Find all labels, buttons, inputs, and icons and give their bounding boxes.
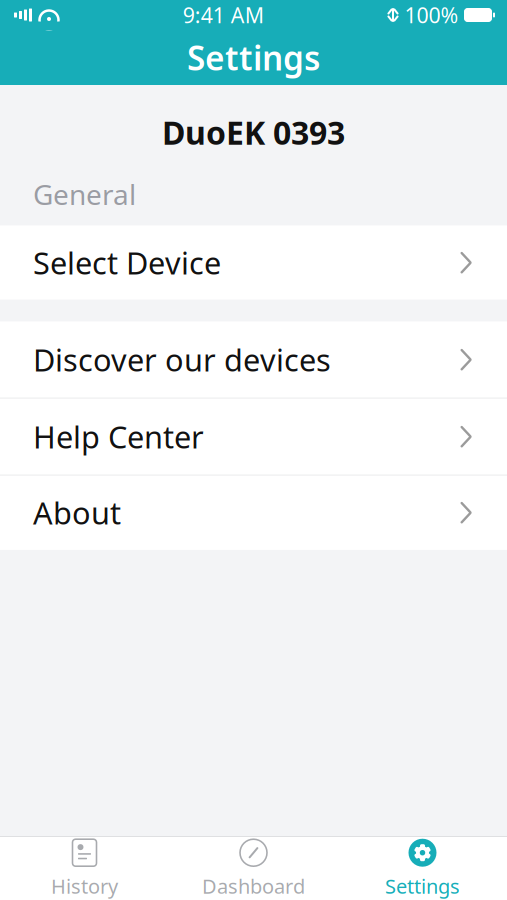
staticText: Discover our devices — [33, 339, 331, 380]
button[interactable]: Settings — [338, 828, 507, 900]
button[interactable]: About — [0, 476, 507, 550]
staticText: Select Device — [33, 242, 221, 283]
staticText: About — [33, 492, 121, 533]
staticText: General — [33, 175, 136, 213]
staticText: DuoEK 0393 — [162, 111, 345, 153]
staticText: Dashboard — [202, 873, 305, 899]
staticText: Help Center — [33, 416, 204, 457]
button[interactable]: Select Device — [0, 226, 507, 300]
button[interactable]: Help Center — [0, 399, 507, 476]
button[interactable]: Discover our devices — [0, 322, 507, 399]
staticText: 100% — [404, 1, 458, 29]
staticText: Settings — [187, 35, 320, 80]
staticText: History — [51, 873, 118, 899]
button[interactable]: History — [0, 828, 169, 900]
button[interactable]: Dashboard — [169, 828, 338, 900]
staticText: Settings — [385, 873, 460, 899]
staticText: 9:41 AM — [183, 1, 264, 29]
